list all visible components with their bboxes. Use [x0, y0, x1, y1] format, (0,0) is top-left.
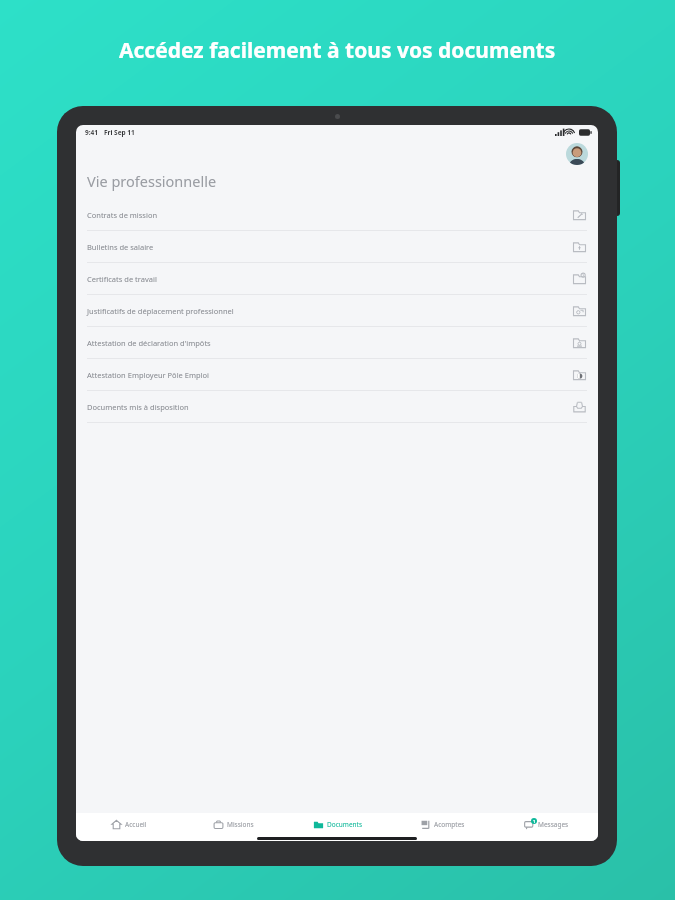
- staticText: Documents mis à disposition: [87, 402, 189, 412]
- button[interactable]: Profil: [566, 143, 588, 165]
- button[interactable]: Certificats de travail: [76, 263, 598, 294]
- staticText: Justificatifs de déplacement professionn…: [87, 306, 234, 316]
- staticText: 1: [533, 819, 536, 824]
- button[interactable]: 1: [494, 813, 598, 835]
- staticText: Accédez facilement à tous vos documents: [119, 36, 556, 65]
- button[interactable]: Acomptes: [390, 813, 494, 835]
- staticText: Contrats de mission: [87, 210, 158, 220]
- button[interactable]: Attestation Employeur Pôle Emploi: [76, 359, 598, 390]
- staticText: Messages: [538, 820, 569, 829]
- button[interactable]: Accueil: [76, 813, 181, 835]
- button[interactable]: Documents mis à disposition: [76, 391, 598, 422]
- button[interactable]: Justificatifs de déplacement professionn…: [76, 295, 598, 326]
- button[interactable]: Documents: [286, 813, 390, 835]
- staticText: Bulletins de salaire: [87, 242, 154, 252]
- staticText: 9:41: [85, 128, 98, 137]
- staticText: Attestation de déclaration d'impôts: [87, 338, 211, 348]
- button[interactable]: Contrats de mission: [76, 199, 598, 230]
- staticText: Documents: [327, 820, 363, 829]
- staticText: Certificats de travail: [87, 274, 157, 284]
- button[interactable]: Bulletins de salaire: [76, 231, 598, 262]
- button[interactable]: Missions: [181, 813, 286, 835]
- staticText: Attestation Employeur Pôle Emploi: [87, 370, 209, 380]
- staticText: Vie professionnelle: [87, 171, 217, 191]
- staticText: Accueil: [125, 820, 147, 829]
- button[interactable]: Attestation de déclaration d'impôts: [76, 327, 598, 358]
- staticText: Missions: [227, 820, 254, 829]
- staticText: Acomptes: [434, 820, 465, 829]
- staticText: Fri Sep 11: [104, 128, 135, 137]
